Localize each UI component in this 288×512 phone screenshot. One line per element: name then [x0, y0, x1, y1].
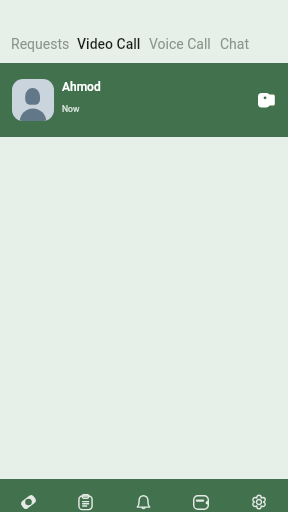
- button[interactable]: Notifications: [114, 479, 172, 512]
- button[interactable]: Explore: [0, 479, 57, 512]
- staticText: Chat: [220, 36, 250, 52]
- button[interactable]: Video Call: [77, 36, 141, 52]
- button[interactable]: Voice Call: [149, 36, 211, 52]
- staticText: Voice Call: [149, 36, 211, 52]
- staticText: Video Call: [77, 36, 141, 52]
- button[interactable]: Ahmod: [0, 63, 288, 137]
- staticText: Now: [62, 104, 80, 114]
- staticText: Ahmod: [62, 80, 101, 94]
- staticText: Requests: [11, 36, 70, 52]
- button[interactable]: Wallet: [172, 479, 230, 512]
- button[interactable]: Tasks: [57, 479, 114, 512]
- button[interactable]: Chat: [220, 36, 250, 52]
- button[interactable]: Settings: [230, 479, 288, 512]
- button[interactable]: Requests: [11, 36, 70, 52]
- button[interactable]: Video call: [251, 85, 281, 115]
